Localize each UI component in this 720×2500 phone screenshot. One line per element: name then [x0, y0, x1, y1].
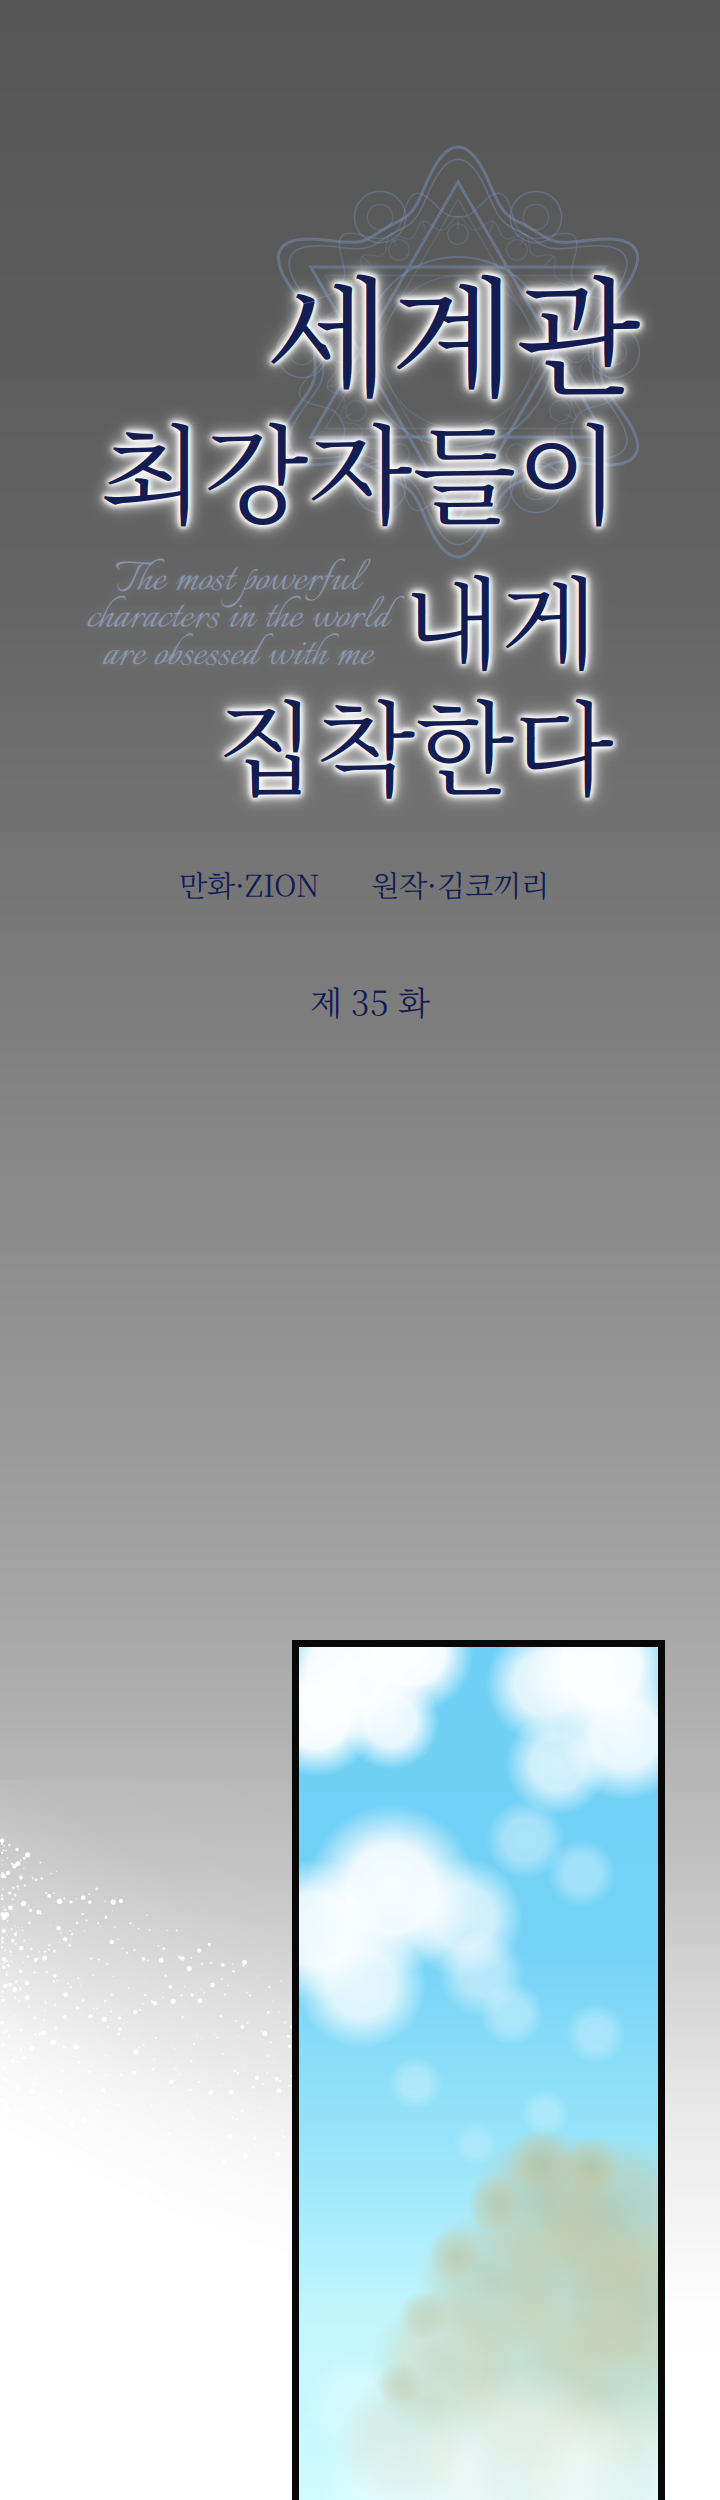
staticText: 세계관: [265, 236, 640, 422]
staticText: The most powerful: [115, 549, 360, 612]
staticText: 내게: [404, 545, 598, 689]
staticText: 최강자들이: [100, 390, 620, 546]
staticText: 집착한다: [217, 668, 613, 816]
staticText: 만화·ZION: [179, 863, 319, 905]
staticText: characters in the world: [87, 586, 389, 650]
staticText: 원작·김코끼리: [371, 863, 549, 905]
staticText: are obsessed with me: [103, 624, 373, 687]
staticText: 제 35 화: [310, 977, 430, 1025]
